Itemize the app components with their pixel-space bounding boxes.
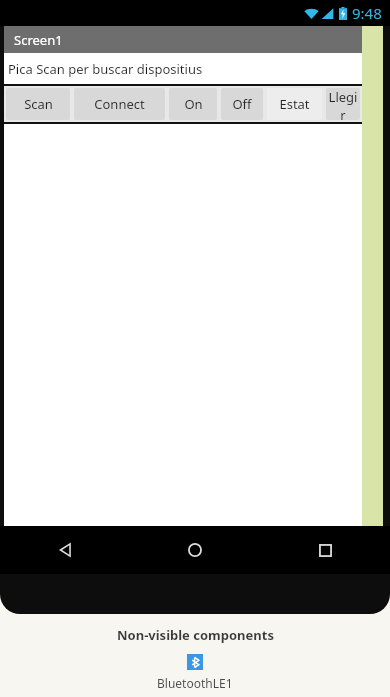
button[interactable]: Back <box>0 526 130 574</box>
button[interactable]: Estat <box>267 88 322 120</box>
staticText: Scan <box>24 95 53 113</box>
staticText: Screen1 <box>14 31 63 49</box>
staticText: BluetoothLE1 <box>157 675 233 691</box>
button[interactable]: Connect <box>74 88 165 120</box>
staticText: 9:48 <box>352 3 382 23</box>
button[interactable]: On <box>169 88 217 120</box>
staticText: Connect <box>94 95 145 113</box>
staticText: Estat <box>279 95 310 113</box>
staticText: Llegir <box>326 88 360 120</box>
button[interactable]: Llegir <box>326 88 360 120</box>
staticText: Off <box>232 95 252 113</box>
staticText: Pica Scan per buscar dispositius <box>8 60 203 78</box>
button[interactable]: Scan <box>6 88 70 120</box>
staticText: On <box>184 95 203 113</box>
staticText: Non-visible components <box>117 626 274 644</box>
button[interactable]: Home <box>130 526 260 574</box>
button[interactable]: Recents <box>260 526 390 574</box>
button[interactable]: Off <box>221 88 263 120</box>
